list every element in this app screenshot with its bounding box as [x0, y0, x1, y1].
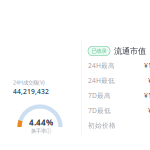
staticText: 7D最低	[88, 106, 111, 115]
button[interactable]: 7D最低	[88, 103, 150, 118]
staticText: ¥8.95	[148, 106, 150, 115]
staticText: 4.44%	[29, 117, 53, 128]
staticText: ¥10.86	[144, 61, 150, 70]
staticText: 24H最低	[88, 76, 115, 85]
staticText: 已收录	[91, 48, 106, 54]
staticText: 44,219,432	[13, 87, 49, 96]
staticText: 换手率ⓘ	[31, 128, 51, 134]
staticText: 7D最高	[88, 91, 111, 100]
staticText: 24H成交额(V)	[13, 79, 45, 86]
staticText: 24H最高	[88, 61, 115, 70]
staticText: ¥9.42	[148, 76, 150, 85]
staticText: ¥12.07	[144, 91, 150, 100]
button[interactable]: 7D最高	[88, 88, 150, 103]
staticText: 初始价格	[88, 121, 116, 130]
staticText: 流通市值	[114, 46, 146, 56]
button[interactable]: 24H最低	[88, 73, 150, 88]
button[interactable]: 24H最高	[88, 58, 150, 73]
button[interactable]: 初始价格	[88, 118, 150, 133]
